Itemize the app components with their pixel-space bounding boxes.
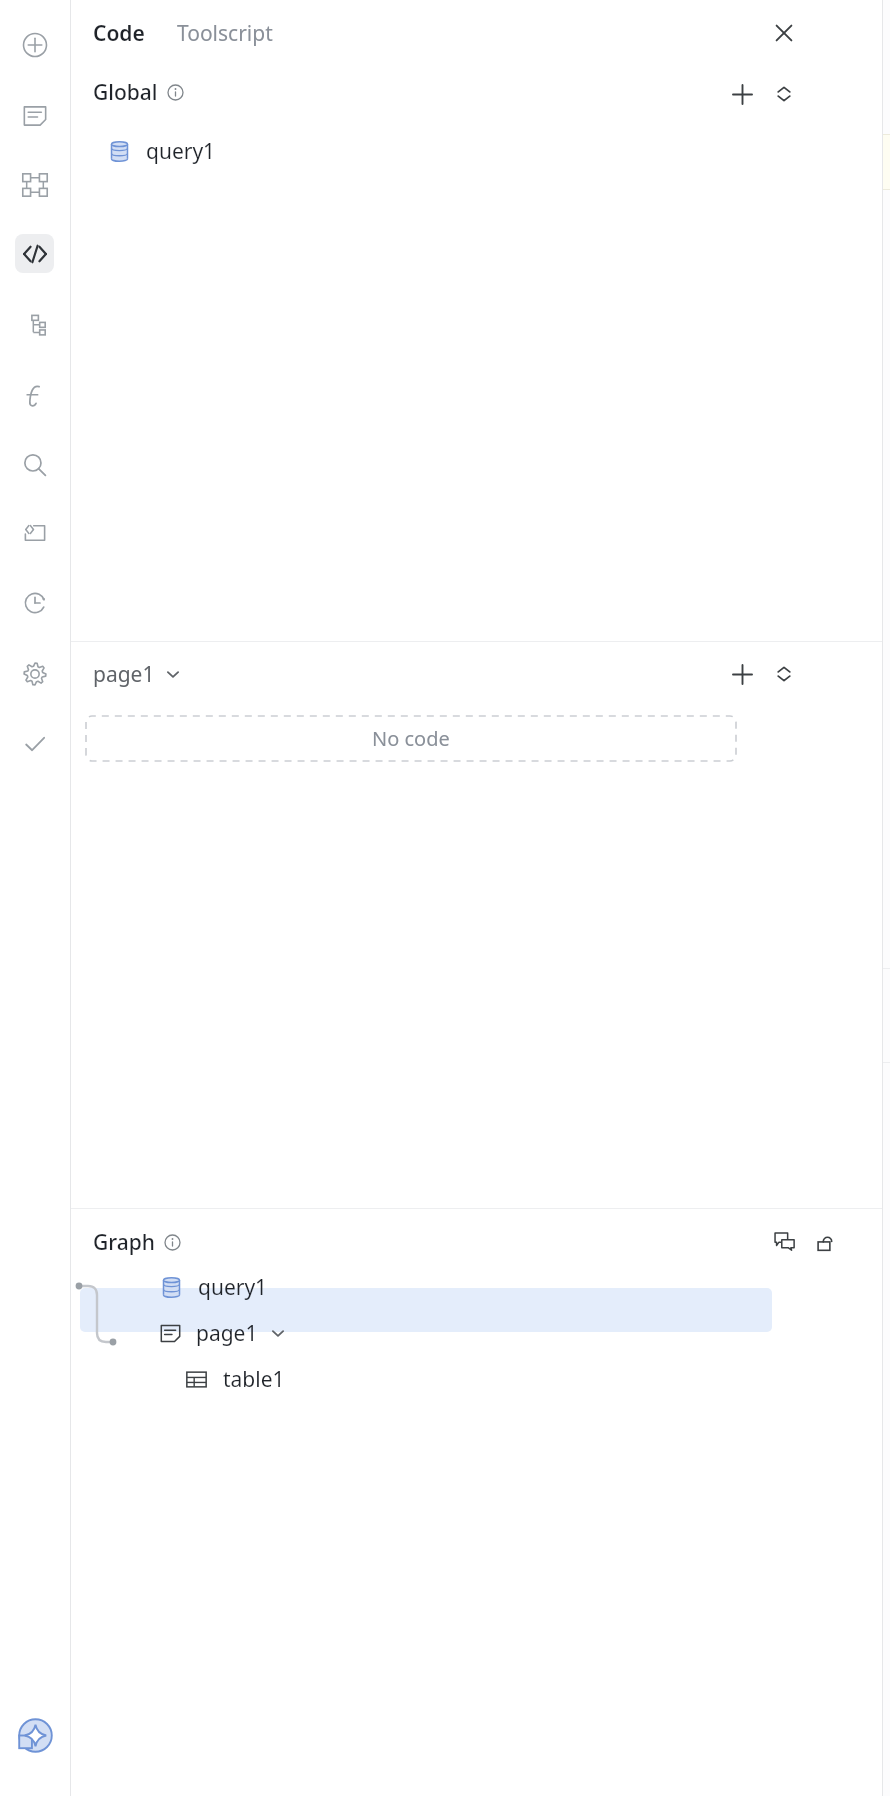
- staticText: No code: [372, 725, 450, 752]
- button[interactable]: Settings: [15, 654, 54, 693]
- button[interactable]: Expand or collapse all: [761, 71, 807, 117]
- staticText: query1: [198, 1273, 268, 1302]
- button[interactable]: table1: [80, 1357, 772, 1401]
- button[interactable]: App logo: [17, 1717, 54, 1754]
- button[interactable]: Code: [93, 10, 145, 56]
- button[interactable]: Close: [762, 11, 806, 55]
- button[interactable]: Notes: [15, 96, 54, 135]
- button[interactable]: Toolscript: [177, 10, 273, 56]
- button[interactable]: Search: [15, 445, 54, 484]
- button[interactable]: Add: [719, 651, 765, 697]
- button[interactable]: query1: [93, 127, 783, 175]
- button[interactable]: query1: [80, 1265, 772, 1309]
- button[interactable]: Expand or collapse all: [761, 651, 807, 697]
- staticText: Code: [93, 19, 145, 48]
- button[interactable]: Unlock: [804, 1219, 848, 1263]
- button[interactable]: Add: [15, 25, 54, 64]
- staticText: Global: [93, 78, 158, 107]
- staticText: Toolscript: [177, 19, 273, 48]
- staticText: page1: [196, 1319, 258, 1348]
- button[interactable]: page1: [80, 1311, 772, 1355]
- button[interactable]: Functions: [15, 375, 54, 414]
- staticText: Graph: [93, 1228, 155, 1257]
- button[interactable]: Graph: [93, 1219, 181, 1265]
- button[interactable]: Hierarchy: [15, 305, 54, 344]
- button[interactable]: Components: [15, 165, 54, 204]
- staticText: query1: [146, 137, 216, 166]
- staticText: table1: [223, 1365, 285, 1394]
- button[interactable]: [80, 1288, 772, 1332]
- button[interactable]: Checks: [15, 724, 54, 763]
- button[interactable]: Comments: [762, 1219, 806, 1263]
- button[interactable]: page1: [93, 651, 181, 697]
- button[interactable]: Code: [15, 234, 54, 273]
- button[interactable]: Snippets: [15, 513, 54, 552]
- button[interactable]: No code: [85, 715, 737, 762]
- staticText: page1: [93, 660, 155, 689]
- button[interactable]: Add: [719, 71, 765, 117]
- button[interactable]: Global: [93, 69, 184, 115]
- button[interactable]: History: [15, 583, 54, 622]
